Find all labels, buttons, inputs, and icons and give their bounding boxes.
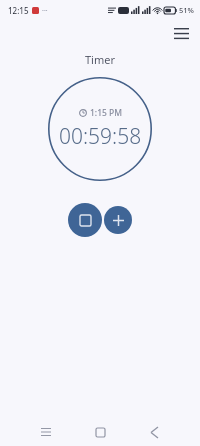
staticText: 51% <box>179 5 194 15</box>
button[interactable]: Home <box>80 418 120 446</box>
button[interactable]: Recent apps <box>26 418 66 446</box>
button[interactable]: Back <box>134 418 174 446</box>
staticText: 12:15 <box>8 5 29 16</box>
staticText: ··· <box>42 6 48 16</box>
staticText: 1:15 PM <box>90 107 123 119</box>
button[interactable]: Menu <box>168 20 194 46</box>
staticText: Timer <box>85 52 115 67</box>
button[interactable]: Stop timer <box>68 203 102 237</box>
staticText: 00:59:58 <box>59 122 142 151</box>
button[interactable]: Add minute <box>104 206 132 234</box>
